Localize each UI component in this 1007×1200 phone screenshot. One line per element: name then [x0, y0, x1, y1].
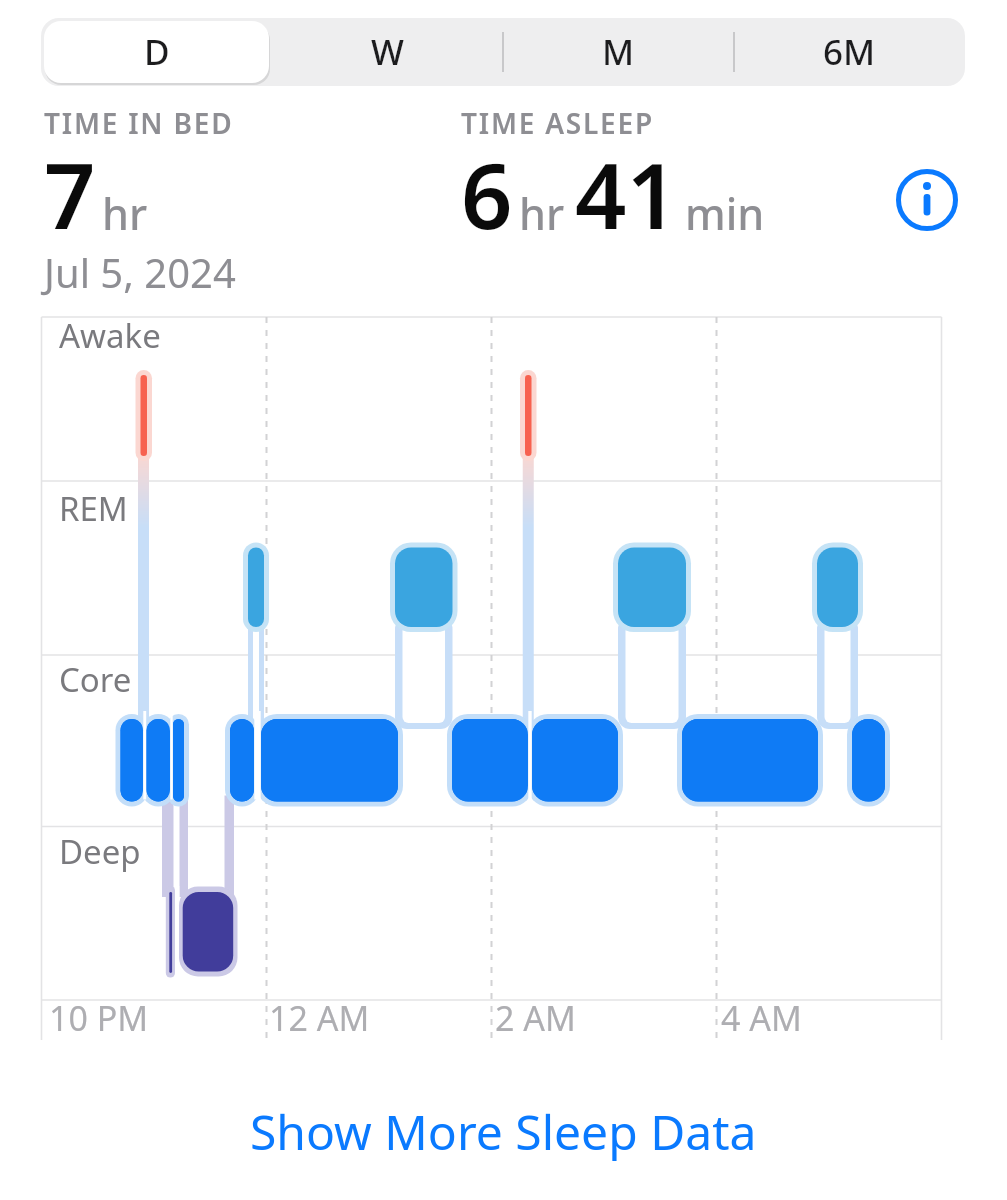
- staticText: Awake: [59, 313, 161, 358]
- staticText: Core: [59, 657, 132, 702]
- staticText: REM: [59, 486, 128, 531]
- staticText: 6: [461, 133, 513, 256]
- staticText: 10 PM: [49, 995, 149, 1041]
- staticText: M: [602, 28, 635, 76]
- staticText: 41: [575, 133, 678, 256]
- staticText: hr: [102, 184, 148, 243]
- staticText: Jul 5, 2024: [44, 245, 236, 299]
- staticText: W: [371, 28, 404, 76]
- staticText: TIME IN BED: [44, 104, 234, 142]
- staticText: 2 AM: [495, 995, 576, 1041]
- staticText: TIME ASLEEP: [461, 104, 654, 142]
- staticText: Show More Sleep Data: [250, 1099, 757, 1164]
- staticText: 4 AM: [721, 995, 802, 1041]
- staticText: 12 AM: [269, 995, 370, 1041]
- staticText: 7: [44, 133, 96, 256]
- staticText: D: [144, 28, 170, 76]
- staticText: hr: [519, 184, 565, 243]
- staticText: Deep: [59, 829, 141, 874]
- staticText: 6M: [823, 28, 876, 76]
- staticText: min: [685, 184, 765, 243]
